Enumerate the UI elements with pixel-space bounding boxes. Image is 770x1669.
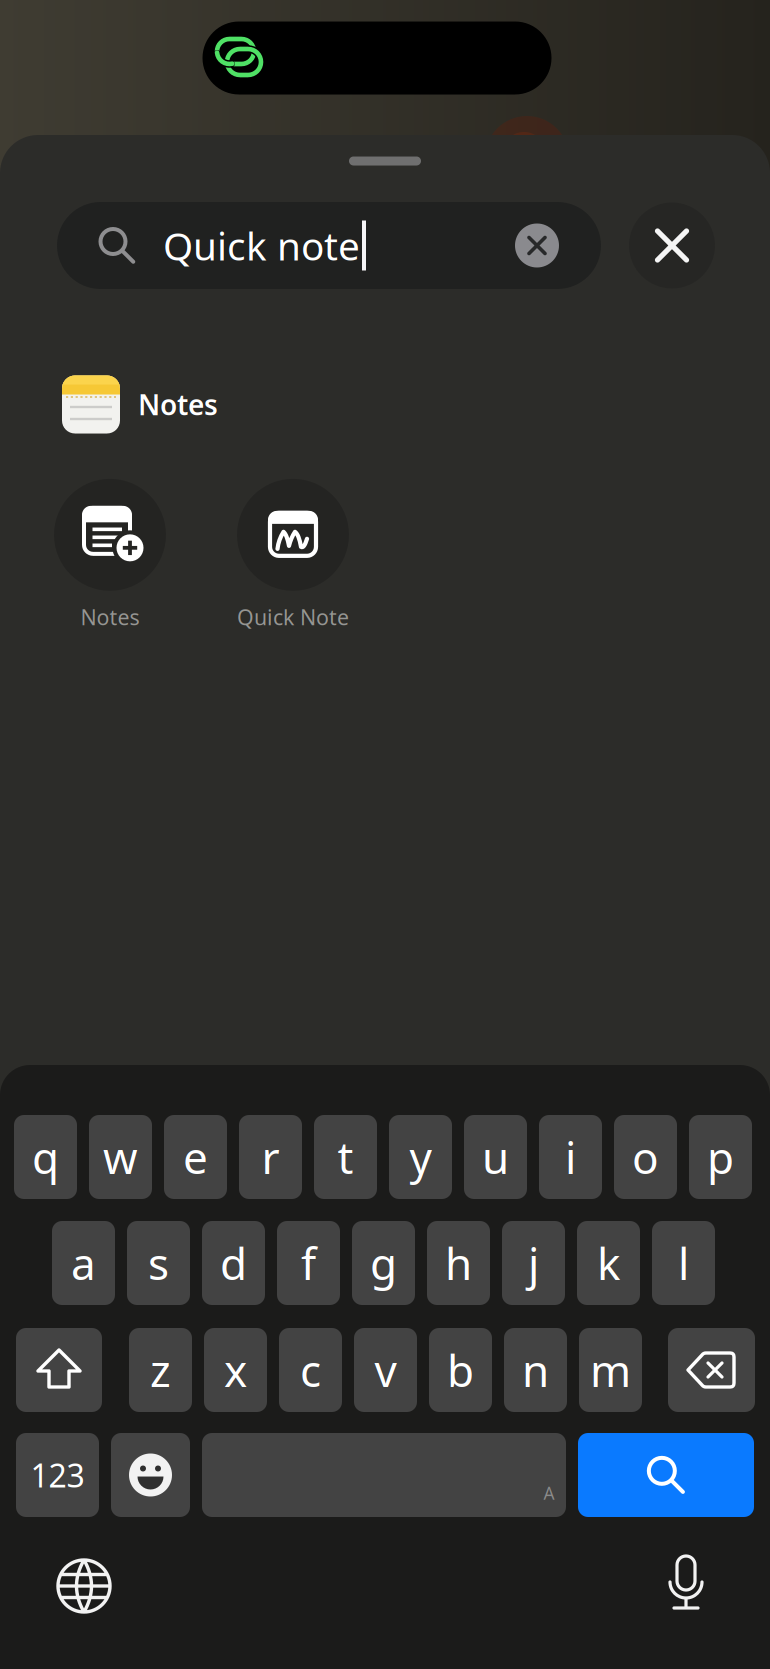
button[interactable]: k [577, 1221, 640, 1305]
staticText: r [261, 1128, 279, 1186]
staticText: x [224, 1341, 247, 1399]
button[interactable]: Quick note [57, 202, 601, 289]
staticText: Notes [138, 386, 218, 423]
staticText: s [148, 1234, 169, 1292]
button[interactable]: g [352, 1221, 415, 1305]
staticText: b [447, 1341, 474, 1399]
staticText: A [543, 1481, 554, 1504]
staticText: h [445, 1234, 472, 1292]
staticText: g [370, 1234, 397, 1292]
button[interactable]: i [539, 1115, 602, 1199]
staticText: m [590, 1341, 631, 1399]
button[interactable]: d [202, 1221, 265, 1305]
button[interactable]: Delete [668, 1328, 755, 1412]
button[interactable]: w [89, 1115, 152, 1199]
button[interactable]: m [579, 1328, 642, 1412]
button[interactable]: f [277, 1221, 340, 1305]
staticText: 123 [30, 1454, 84, 1496]
staticText: t [337, 1128, 353, 1186]
staticText: q [32, 1128, 59, 1186]
button[interactable]: n [504, 1328, 567, 1412]
button[interactable]: r [239, 1115, 302, 1199]
button[interactable]: y [389, 1115, 452, 1199]
staticText: Notes [80, 603, 139, 631]
staticText: k [597, 1234, 620, 1292]
button[interactable]: Quick Note [237, 479, 349, 631]
staticText: u [482, 1128, 509, 1186]
staticText: Quick Note [237, 603, 349, 631]
staticText: z [150, 1341, 171, 1399]
staticText: d [220, 1234, 247, 1292]
button[interactable]: a [52, 1221, 115, 1305]
button[interactable]: Dictate [656, 1554, 716, 1618]
button[interactable]: e [164, 1115, 227, 1199]
button[interactable]: Next keyboard [54, 1556, 114, 1616]
button[interactable]: v [354, 1328, 417, 1412]
button[interactable]: Space [202, 1433, 566, 1517]
staticText: c [300, 1341, 321, 1399]
button[interactable]: o [614, 1115, 677, 1199]
staticText: j [528, 1234, 539, 1292]
button[interactable]: Notes [62, 375, 382, 433]
staticText: e [183, 1128, 208, 1186]
staticText: a [71, 1234, 96, 1292]
button[interactable]: s [127, 1221, 190, 1305]
staticText: l [678, 1234, 689, 1292]
button[interactable]: Close [629, 202, 715, 288]
button[interactable]: Clear text [515, 223, 559, 267]
staticText: p [707, 1128, 734, 1186]
button[interactable]: h [427, 1221, 490, 1305]
staticText: n [522, 1341, 549, 1399]
button[interactable]: c [279, 1328, 342, 1412]
button[interactable]: x [204, 1328, 267, 1412]
staticText: v [374, 1341, 396, 1399]
staticText: Quick note [163, 220, 360, 271]
button[interactable]: b [429, 1328, 492, 1412]
button[interactable]: z [129, 1328, 192, 1412]
button[interactable]: u [464, 1115, 527, 1199]
button[interactable]: p [689, 1115, 752, 1199]
button[interactable]: q [14, 1115, 77, 1199]
button[interactable]: Notes [54, 479, 166, 631]
button[interactable]: j [502, 1221, 565, 1305]
staticText: o [632, 1128, 659, 1186]
button[interactable]: Shift [16, 1328, 102, 1412]
button[interactable]: Emoji [111, 1433, 190, 1517]
button[interactable]: Search [578, 1433, 754, 1517]
staticText: w [103, 1128, 138, 1186]
button[interactable]: 123 [16, 1433, 99, 1517]
staticText: y [409, 1128, 431, 1186]
staticText: f [301, 1234, 316, 1292]
staticText: i [565, 1128, 576, 1186]
button[interactable]: t [314, 1115, 377, 1199]
button[interactable]: l [652, 1221, 715, 1305]
